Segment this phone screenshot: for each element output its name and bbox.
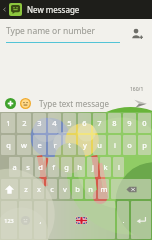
- button[interactable]: 9: [123, 113, 136, 133]
- staticText: n: [88, 184, 93, 194]
- button[interactable]: Attach: [3, 96, 18, 111]
- button[interactable]: Emoji: [19, 201, 32, 239]
- staticText: d: [38, 162, 43, 172]
- button[interactable]: x: [33, 179, 44, 199]
- button[interactable]: q: [1, 135, 15, 155]
- button[interactable]: .: [117, 201, 129, 239]
- button[interactable]: 4: [48, 113, 61, 133]
- staticText: p: [142, 140, 147, 150]
- button[interactable]: t: [63, 135, 76, 155]
- button[interactable]: 6: [78, 113, 91, 133]
- button[interactable]: r: [48, 135, 61, 155]
- button[interactable]: 7: [93, 113, 106, 133]
- staticText: i: [114, 140, 116, 150]
- button[interactable]: 3: [33, 113, 46, 133]
- staticText: 7: [97, 118, 102, 128]
- staticText: 3: [37, 118, 42, 128]
- button[interactable]: d: [35, 157, 46, 177]
- staticText: t: [68, 140, 71, 150]
- staticText: New message: [27, 4, 80, 15]
- staticText: l: [118, 162, 120, 172]
- button[interactable]: v: [59, 179, 70, 199]
- button[interactable]: i: [108, 135, 121, 155]
- button[interactable]: 5: [63, 113, 76, 133]
- button[interactable]: 2: [17, 113, 31, 133]
- staticText: 4: [52, 118, 57, 128]
- staticText: v: [63, 184, 67, 194]
- button[interactable]: Send: [130, 94, 150, 112]
- button[interactable]: e: [33, 135, 46, 155]
- button[interactable]: Backspace: [111, 179, 151, 199]
- button[interactable]: b: [72, 179, 83, 199]
- button[interactable]: l: [113, 157, 124, 177]
- button[interactable]: j: [87, 157, 98, 177]
- staticText: 2: [22, 118, 27, 128]
- staticText: q: [6, 140, 11, 150]
- button[interactable]: 0: [138, 113, 151, 133]
- staticText: z: [24, 184, 28, 194]
- button[interactable]: Emoji: [18, 96, 33, 111]
- button[interactable]: m: [98, 179, 109, 199]
- staticText: k: [103, 162, 108, 172]
- staticText: g: [64, 162, 69, 172]
- staticText: .: [122, 215, 125, 225]
- staticText: e: [37, 140, 42, 150]
- button[interactable]: o: [123, 135, 136, 155]
- staticText: 8: [112, 118, 117, 128]
- button[interactable]: Add contact: [126, 23, 148, 45]
- staticText: o: [127, 140, 132, 150]
- button[interactable]: Enter: [131, 201, 151, 239]
- staticText: Type text message: [39, 98, 109, 109]
- button[interactable]: 8: [108, 113, 121, 133]
- staticText: y: [83, 140, 87, 150]
- staticText: j: [92, 162, 94, 172]
- staticText: f: [52, 162, 55, 172]
- button[interactable]: 123: [1, 201, 17, 239]
- button[interactable]: a: [9, 157, 20, 177]
- staticText: s: [26, 162, 30, 172]
- staticText: 6: [82, 118, 87, 128]
- staticText: c: [50, 184, 54, 194]
- button[interactable]: n: [85, 179, 96, 199]
- button[interactable]: g: [61, 157, 72, 177]
- staticText: 0: [142, 118, 147, 128]
- staticText: Type name or number: [6, 25, 95, 37]
- button[interactable]: ,: [34, 201, 46, 239]
- button[interactable]: z: [20, 179, 31, 199]
- button[interactable]: 1: [1, 113, 15, 133]
- staticText: 160/1: [130, 86, 144, 93]
- staticText: x: [37, 184, 41, 194]
- staticText: b: [75, 184, 80, 194]
- button[interactable]: c: [46, 179, 57, 199]
- staticText: w: [21, 140, 27, 150]
- staticText: 5: [67, 118, 72, 128]
- button[interactable]: u: [93, 135, 106, 155]
- button[interactable]: f: [48, 157, 59, 177]
- staticText: 9: [127, 118, 132, 128]
- button[interactable]: y: [78, 135, 91, 155]
- staticText: u: [97, 140, 102, 150]
- staticText: m: [100, 184, 108, 194]
- button[interactable]: s: [22, 157, 33, 177]
- button[interactable]: h: [74, 157, 85, 177]
- button[interactable]: p: [138, 135, 151, 155]
- button[interactable]: Shift: [1, 179, 18, 199]
- staticText: 123: [4, 217, 14, 224]
- staticText: ,: [39, 215, 42, 225]
- staticText: h: [77, 162, 82, 172]
- button[interactable]: Space: [48, 201, 115, 239]
- staticText: 1: [6, 118, 11, 128]
- button[interactable]: k: [100, 157, 111, 177]
- button[interactable]: w: [17, 135, 31, 155]
- staticText: r: [53, 140, 57, 150]
- button[interactable]: Back: [0, 0, 9, 19]
- staticText: a: [12, 162, 17, 172]
